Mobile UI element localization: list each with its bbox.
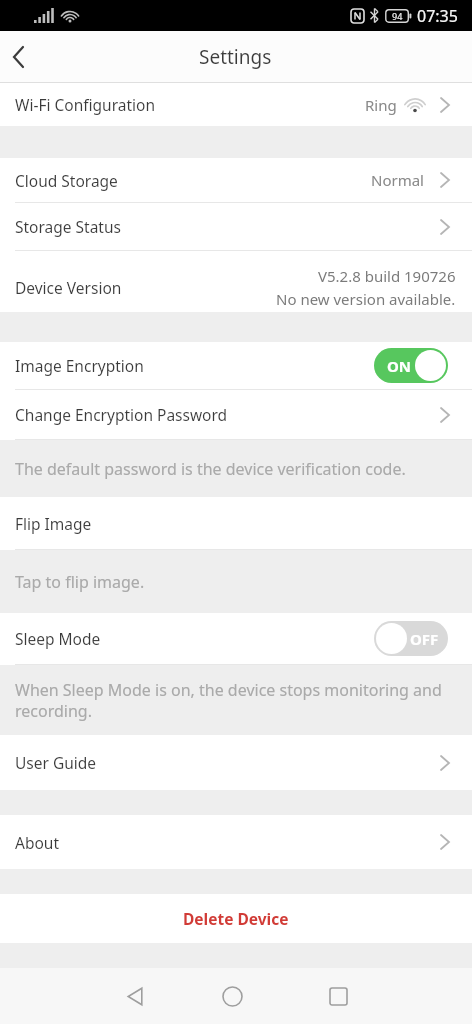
staticText: Change Encryption Password xyxy=(15,404,228,425)
button[interactable]: Cloud Storage xyxy=(0,158,472,202)
staticText: Cloud Storage xyxy=(15,170,118,191)
staticText: Flip Image xyxy=(15,513,92,534)
staticText: Delete Device xyxy=(183,908,289,929)
button[interactable]: Delete Device xyxy=(0,894,472,943)
staticText: Sleep Mode xyxy=(15,628,101,649)
staticText: Wi-Fi Configuration xyxy=(15,94,156,115)
button[interactable]: Sleep Mode xyxy=(0,613,472,664)
staticText: 94 xyxy=(392,10,403,22)
button[interactable]: User Guide xyxy=(0,735,472,790)
button[interactable] xyxy=(314,972,362,1020)
button[interactable] xyxy=(111,972,159,1020)
button[interactable]: Image Encryption xyxy=(0,342,472,389)
staticText: Device Version xyxy=(15,277,122,298)
staticText: 07:35 xyxy=(417,5,458,27)
staticText: Normal xyxy=(371,170,424,190)
staticText: User Guide xyxy=(15,752,97,773)
staticText: When Sleep Mode is on, the device stops … xyxy=(15,679,444,722)
button[interactable]: Flip Image xyxy=(0,497,472,549)
staticText: Image Encryption xyxy=(15,355,144,376)
staticText: OFF xyxy=(410,629,439,649)
button[interactable]: Wi-Fi Configuration xyxy=(0,83,472,126)
button[interactable] xyxy=(0,31,40,82)
button[interactable]: Change Encryption Password xyxy=(0,390,472,439)
staticText: Tap to flip image. xyxy=(15,571,145,593)
staticText: Storage Status xyxy=(15,216,121,237)
staticText: The default password is the device verif… xyxy=(15,458,406,480)
staticText: About xyxy=(15,832,59,853)
button[interactable]: About xyxy=(0,815,472,869)
staticText: Settings xyxy=(199,44,272,70)
staticText: Ring xyxy=(365,95,397,115)
button[interactable]: Storage Status xyxy=(0,203,472,250)
button[interactable] xyxy=(208,972,256,1020)
button[interactable]: Device Version xyxy=(0,251,472,312)
button[interactable]: ON xyxy=(374,348,448,383)
button[interactable]: OFF xyxy=(374,621,448,656)
staticText: No new version available. xyxy=(276,289,456,309)
staticText: V5.2.8 build 190726 xyxy=(318,266,456,286)
staticText: ON xyxy=(387,356,412,376)
